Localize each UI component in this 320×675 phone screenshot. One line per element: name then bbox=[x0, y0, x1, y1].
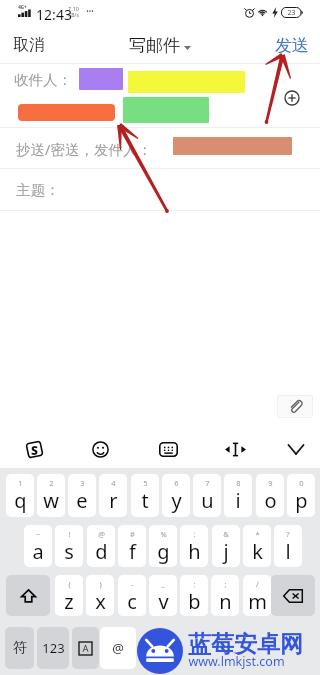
staticText: 7.10 bbox=[68, 5, 79, 12]
button[interactable]: Switch to English bbox=[72, 627, 99, 669]
staticText: : bbox=[193, 529, 196, 539]
button[interactable]: 2 bbox=[37, 474, 65, 517]
staticText: 8 bbox=[236, 478, 241, 488]
button[interactable]: 0 bbox=[287, 474, 315, 517]
button[interactable]: 符 bbox=[5, 627, 34, 669]
button[interactable]: ; bbox=[211, 575, 239, 616]
staticText: y bbox=[171, 487, 182, 514]
button[interactable]: _ bbox=[149, 575, 177, 616]
button[interactable]: ( bbox=[55, 575, 83, 616]
button[interactable]: Keyboard layout bbox=[159, 441, 178, 457]
button[interactable]: 123 bbox=[37, 627, 69, 669]
staticText: u bbox=[201, 487, 214, 514]
staticText: 1 bbox=[18, 478, 23, 488]
button[interactable]: 9 bbox=[256, 474, 284, 517]
staticText: t bbox=[141, 487, 149, 514]
button[interactable]: 3 bbox=[68, 474, 96, 517]
button[interactable]: # bbox=[118, 525, 146, 567]
staticText: 9 bbox=[268, 478, 273, 488]
staticText: 收件人： bbox=[14, 71, 72, 89]
staticText: 6 bbox=[174, 478, 179, 488]
button[interactable]: : bbox=[180, 575, 208, 616]
button[interactable]: ) bbox=[86, 575, 114, 616]
button[interactable]: : bbox=[180, 525, 208, 567]
staticText: S bbox=[31, 442, 38, 458]
staticText: * bbox=[255, 529, 260, 539]
button[interactable]: ! bbox=[55, 525, 83, 567]
staticText: e bbox=[76, 487, 88, 514]
button[interactable]: Hide keyboard bbox=[287, 442, 304, 456]
button[interactable]: 4 bbox=[99, 474, 127, 517]
button[interactable]: 5 bbox=[131, 474, 159, 517]
staticText: j bbox=[223, 538, 229, 565]
button[interactable]: ~ bbox=[24, 525, 52, 567]
button[interactable]: @ bbox=[87, 525, 115, 567]
staticText: c bbox=[127, 588, 137, 615]
staticText: _ bbox=[161, 579, 165, 589]
button[interactable]: ? bbox=[274, 525, 302, 567]
staticText: f bbox=[129, 538, 136, 565]
staticText: n bbox=[219, 588, 232, 615]
staticText: @ bbox=[98, 529, 105, 539]
staticText: g bbox=[157, 538, 170, 565]
staticText: 写邮件 bbox=[129, 35, 180, 56]
staticText: 23 bbox=[287, 8, 296, 18]
button[interactable]: 7 bbox=[193, 474, 221, 517]
button[interactable]: 发送 bbox=[275, 35, 309, 56]
staticText: 取消 bbox=[13, 35, 45, 55]
button[interactable]: Move cursor bbox=[225, 441, 246, 457]
button[interactable]: * bbox=[243, 525, 271, 567]
staticText: - bbox=[131, 579, 134, 589]
staticText: m bbox=[248, 588, 267, 615]
button[interactable]: Shift bbox=[6, 575, 50, 616]
staticText: 123 bbox=[42, 639, 65, 657]
button[interactable]: 8 bbox=[224, 474, 252, 517]
button[interactable]: 写邮件 bbox=[129, 35, 191, 56]
button[interactable]: 1 bbox=[6, 474, 34, 517]
staticText: # bbox=[130, 529, 135, 539]
staticText: s bbox=[64, 538, 74, 565]
button[interactable]: @ bbox=[100, 627, 136, 669]
staticText: % bbox=[160, 529, 167, 539]
button[interactable]: Emoji bbox=[91, 440, 110, 459]
staticText: 符 bbox=[13, 639, 27, 657]
staticText: @ bbox=[112, 639, 124, 657]
staticText: 5 bbox=[143, 478, 148, 488]
staticText: l bbox=[285, 538, 291, 565]
button[interactable]: / bbox=[243, 575, 271, 616]
button[interactable]: Attach file bbox=[277, 395, 313, 418]
staticText: & bbox=[223, 529, 229, 539]
button[interactable]: % bbox=[149, 525, 177, 567]
staticText: 4G+ bbox=[18, 4, 27, 10]
staticText: ) bbox=[99, 579, 102, 589]
staticText: 0 bbox=[299, 478, 304, 488]
staticText: 7 bbox=[205, 478, 210, 488]
button[interactable]: Add recipient bbox=[284, 90, 300, 106]
staticText: x bbox=[95, 588, 106, 615]
staticText: A bbox=[82, 642, 89, 655]
staticText: 主题： bbox=[16, 181, 60, 199]
button[interactable]: 取消 bbox=[13, 35, 45, 55]
button[interactable]: Sogou input bbox=[25, 440, 44, 459]
staticText: 2 bbox=[49, 478, 54, 488]
staticText: 12:43 bbox=[36, 5, 72, 24]
staticText: 4 bbox=[111, 478, 116, 488]
staticText: w bbox=[43, 487, 59, 514]
staticText: a bbox=[32, 538, 44, 565]
staticText: ! bbox=[68, 529, 71, 539]
staticText: z bbox=[64, 588, 74, 615]
staticText: r bbox=[109, 487, 118, 514]
staticText: www.lmkjst.com bbox=[188, 653, 285, 670]
staticText: p bbox=[295, 487, 308, 514]
staticText: i bbox=[235, 487, 241, 514]
button[interactable]: Backspace bbox=[271, 575, 315, 616]
staticText: v bbox=[158, 588, 169, 615]
staticText: KB/s bbox=[68, 12, 79, 19]
staticText: : bbox=[193, 579, 196, 589]
button[interactable]: 6 bbox=[162, 474, 190, 517]
button[interactable]: - bbox=[118, 575, 146, 616]
staticText: k bbox=[252, 538, 263, 565]
staticText: / bbox=[256, 579, 259, 589]
staticText: h bbox=[188, 538, 201, 565]
button[interactable]: & bbox=[212, 525, 240, 567]
